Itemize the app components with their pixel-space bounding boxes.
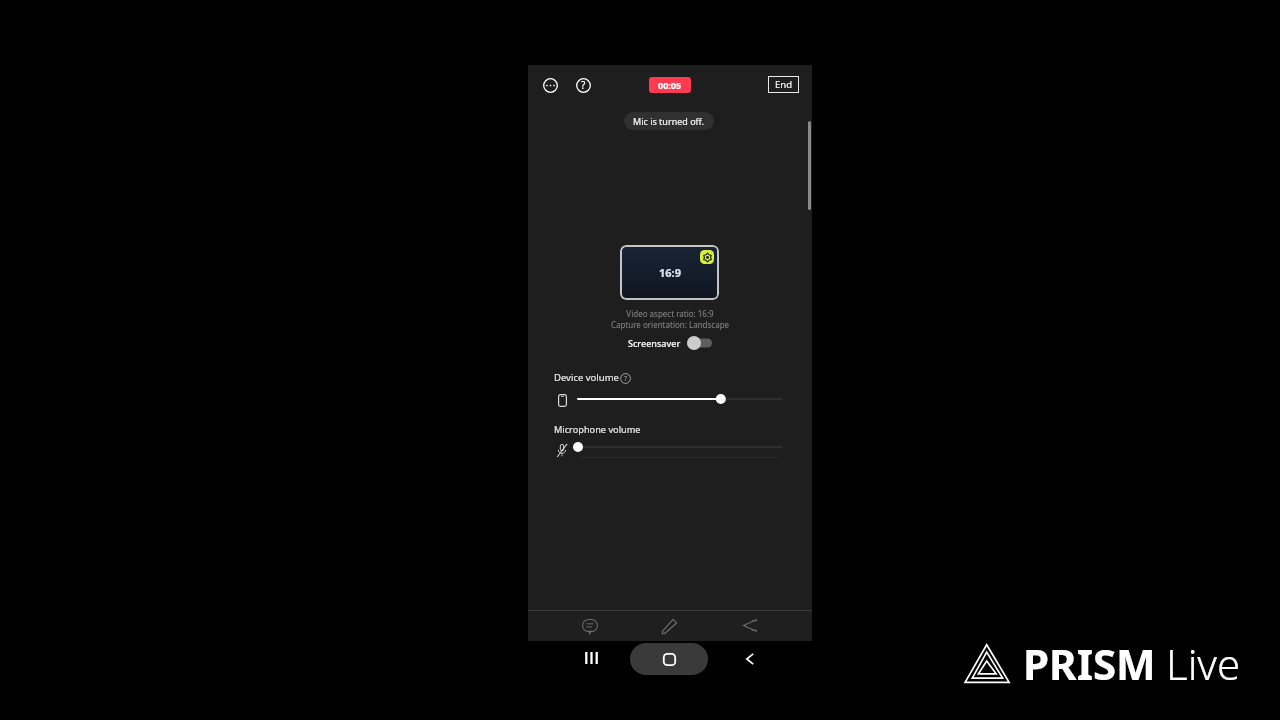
staticText: 00:05 [658,79,682,91]
button[interactable]: More options [538,73,562,97]
staticText: Screensaver [628,337,681,349]
button[interactable]: Recents [578,645,604,671]
staticText: Device volume [554,371,619,384]
button[interactable]: Home [630,643,708,675]
staticText: ? [624,374,628,384]
button[interactable]: Share [736,611,764,639]
staticText: ? [581,78,586,92]
staticText: Video aspect ratio: 16:9 [528,308,812,319]
button[interactable]: Device volume slider [578,392,782,406]
staticText: Capture orientation: Landscape [528,319,812,330]
staticText: End [775,78,792,91]
button[interactable]: Help [571,73,595,97]
staticText: PRISM [1023,635,1156,692]
staticText: Mic is turned off. [633,115,705,127]
button[interactable]: Device volume help [620,373,631,384]
staticText: 16:9 [659,265,681,280]
staticText: Live [1166,635,1241,692]
button[interactable]: Back [736,645,763,672]
button[interactable]: Screensaver toggle [687,336,712,350]
button[interactable]: Camera settings [700,250,714,264]
button[interactable]: End [768,76,799,93]
button[interactable]: Edit [655,612,683,640]
button[interactable]: 00:05 [649,77,691,93]
button[interactable]: Comments [576,612,604,640]
button[interactable]: 16:9 [620,245,719,300]
staticText: Microphone volume [554,423,641,436]
button[interactable]: Microphone volume slider [578,440,782,454]
